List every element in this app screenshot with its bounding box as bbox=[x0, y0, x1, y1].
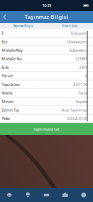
staticText: Ana Taşınmaz bbox=[62, 107, 87, 113]
button[interactable]: Kamera bbox=[56, 188, 74, 202]
staticText: G23-A-01-B bbox=[67, 116, 87, 121]
staticText: Ada bbox=[2, 65, 9, 70]
staticText: Eskişehir bbox=[71, 30, 87, 36]
staticText: 10:39 bbox=[42, 3, 51, 8]
staticText: Mahalle/Köy bbox=[2, 47, 23, 53]
staticText: Zemin Tip bbox=[2, 107, 19, 113]
staticText: Hisseli Liste bbox=[62, 24, 78, 28]
button[interactable]: Hisseli Liste bbox=[46, 23, 93, 29]
staticText: 123987 bbox=[75, 56, 87, 61]
button[interactable]: Geri bbox=[0, 11, 10, 23]
button[interactable]: Daha Fazla bbox=[74, 188, 93, 202]
button[interactable]: Katmanlar bbox=[0, 188, 19, 202]
staticText: Tapu Alanı bbox=[2, 82, 20, 87]
button[interactable]: Taşınmaz Bilgisi bbox=[0, 23, 46, 29]
staticText: Taşınmaza Git bbox=[33, 126, 60, 132]
staticText: Koyaltı bbox=[76, 99, 87, 104]
staticText: Mahalle No bbox=[2, 56, 22, 61]
button[interactable]: Ölçüm bbox=[37, 188, 56, 202]
staticText: 2301 bbox=[79, 65, 87, 70]
staticText: İlçe bbox=[2, 39, 8, 44]
staticText: Parsel bbox=[2, 73, 13, 78]
staticText: 4 bbox=[85, 73, 87, 78]
staticText: Mevkii bbox=[2, 99, 14, 104]
staticText: Tarla bbox=[78, 90, 87, 95]
staticText: İl bbox=[2, 30, 4, 36]
button[interactable]: Taşınmaza Git bbox=[0, 123, 93, 135]
button[interactable]: Konum bbox=[19, 188, 37, 202]
staticText: 4.011,76 bbox=[73, 82, 87, 87]
staticText: Taşınmaz Bilgisi bbox=[24, 13, 68, 21]
staticText: Taşınmaz Bilgisi bbox=[13, 24, 33, 28]
staticText: Odunpazarı bbox=[67, 39, 87, 44]
staticText: Pafta bbox=[2, 116, 10, 121]
staticText: Sultandere bbox=[69, 47, 87, 53]
staticText: Nitelik bbox=[2, 90, 13, 95]
